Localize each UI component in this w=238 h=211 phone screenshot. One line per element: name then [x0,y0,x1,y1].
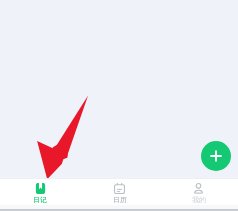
button[interactable]: Add [201,141,231,171]
staticText: 日记 [33,195,47,204]
button[interactable]: 日记 [0,181,80,204]
button[interactable]: 我的 [159,181,238,204]
button[interactable]: 日历 [80,181,159,204]
staticText: 我的 [192,195,206,204]
staticText: 日历 [113,195,127,204]
